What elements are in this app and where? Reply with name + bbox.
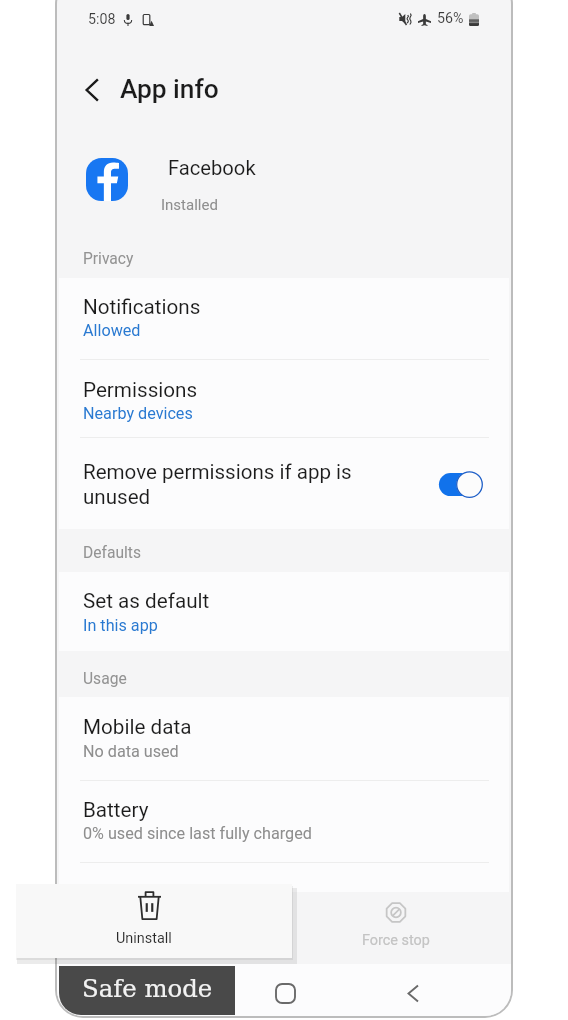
button[interactable]: Permissions [83, 378, 198, 402]
button[interactable]: Home [264, 972, 306, 1014]
button[interactable]: Notifications [83, 295, 201, 319]
staticText: 56% [437, 10, 464, 27]
staticText: Mobile data [83, 715, 192, 739]
staticText: Battery [83, 798, 149, 822]
button[interactable] [293, 884, 509, 964]
staticText: Installed [161, 196, 218, 214]
staticText: No data used [83, 742, 179, 761]
button[interactable]: Battery [83, 798, 149, 822]
staticText: 0% used since last fully charged [83, 824, 312, 843]
button[interactable]: Back [73, 71, 111, 109]
staticText: 5:08 [88, 11, 116, 28]
staticText: App info [120, 74, 219, 105]
staticText: Privacy [83, 250, 134, 268]
staticText: Set as default [83, 589, 210, 613]
staticText: Allowed [83, 321, 141, 340]
staticText: Safe mode [82, 974, 213, 1002]
staticText: In this app [83, 616, 158, 635]
button[interactable]: Set as default [83, 589, 210, 613]
staticText: Usage [83, 670, 127, 688]
staticText: Nearby devices [83, 404, 193, 423]
staticText: Defaults [83, 544, 141, 562]
staticText: Uninstall [116, 930, 172, 947]
staticText: Permissions [83, 378, 198, 402]
staticText: Facebook [168, 156, 256, 180]
button[interactable]: Remove permissions toggle [436, 466, 486, 499]
button[interactable] [16, 884, 292, 958]
staticText: Notifications [83, 295, 201, 319]
staticText: unused [83, 485, 151, 509]
staticText: Force stop [362, 932, 430, 949]
button[interactable]: Mobile data [83, 715, 192, 739]
staticText: Remove permissions if app is [83, 460, 352, 484]
button[interactable]: Recents [128, 970, 170, 1012]
button[interactable]: Back [392, 972, 434, 1014]
